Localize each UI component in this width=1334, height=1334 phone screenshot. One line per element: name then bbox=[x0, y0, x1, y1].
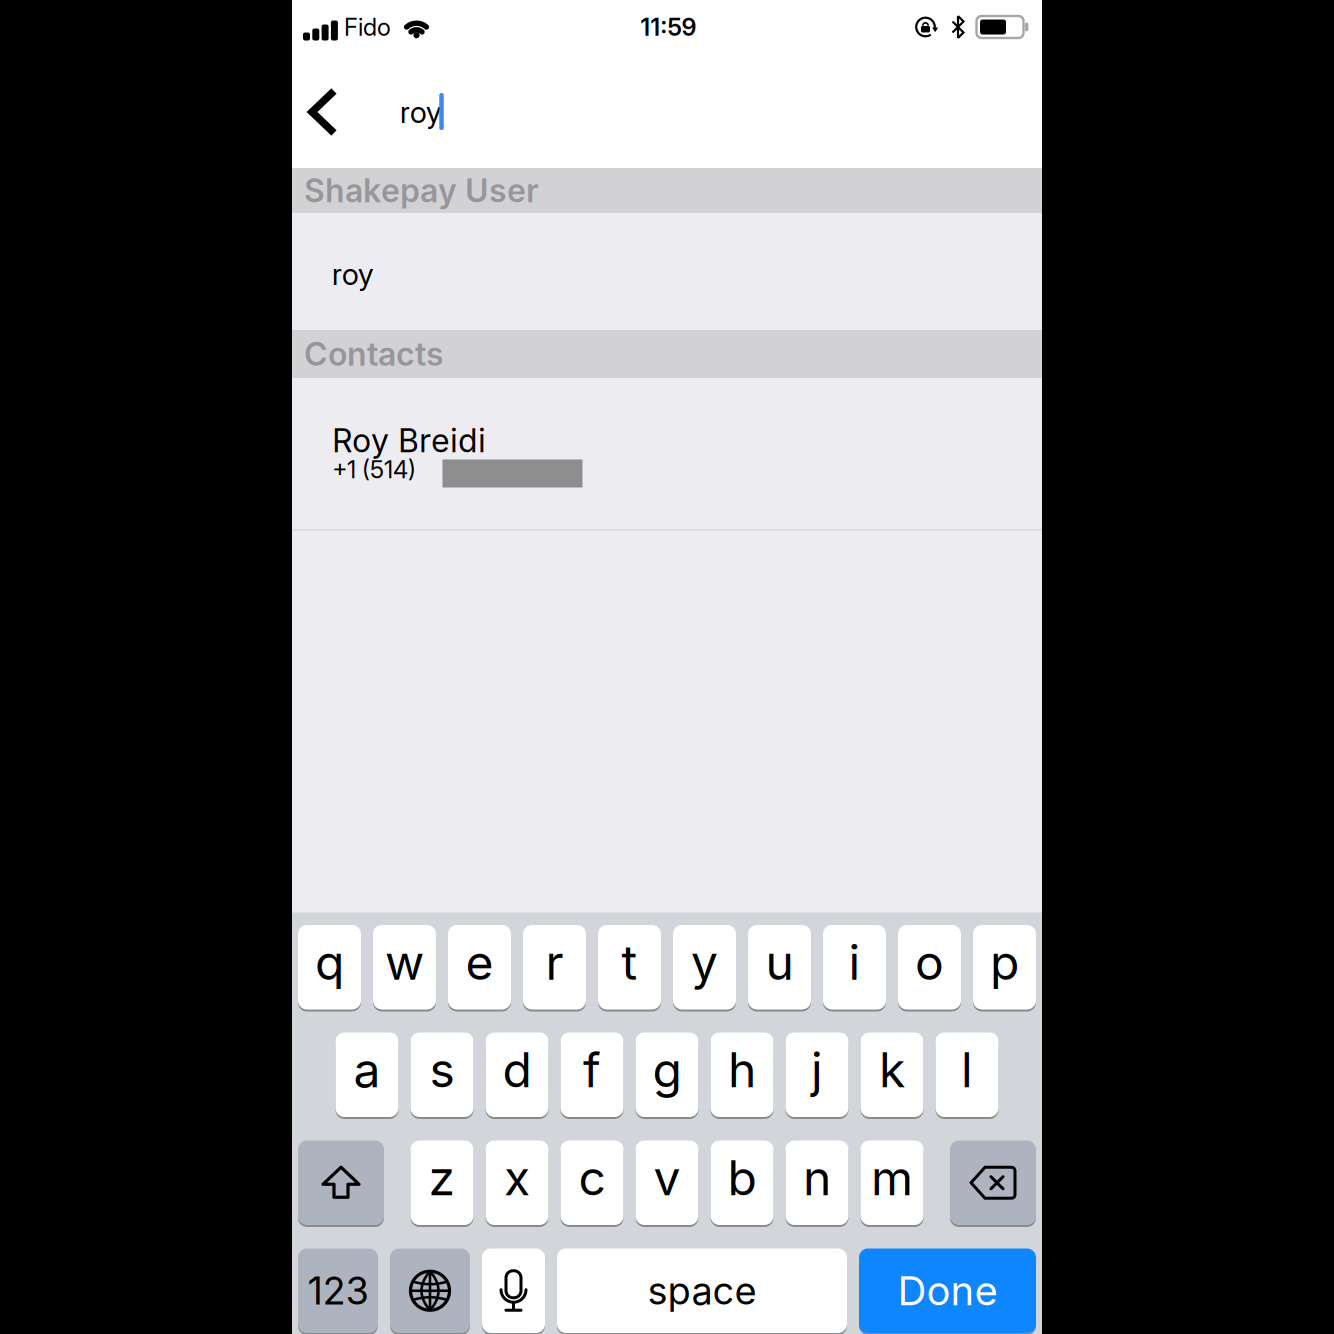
button[interactable]: t bbox=[598, 924, 661, 1010]
staticText: Shakepay User bbox=[304, 172, 539, 209]
button[interactable]: space bbox=[557, 1247, 847, 1334]
staticText: t bbox=[621, 934, 637, 990]
button[interactable]: v bbox=[635, 1139, 698, 1226]
staticText: roy bbox=[400, 94, 442, 130]
button[interactable]: i bbox=[823, 924, 886, 1010]
button[interactable]: z bbox=[410, 1139, 473, 1226]
button[interactable]: Shift bbox=[298, 1139, 384, 1226]
staticText: b bbox=[727, 1149, 756, 1206]
staticText: m bbox=[871, 1149, 913, 1206]
button[interactable]: e bbox=[448, 924, 511, 1010]
button[interactable]: p bbox=[973, 924, 1036, 1010]
staticText: o bbox=[915, 934, 944, 990]
staticText: Fido bbox=[344, 13, 391, 41]
button[interactable]: Roy Breidi bbox=[292, 378, 1042, 529]
button[interactable]: y bbox=[673, 924, 736, 1010]
staticText: s bbox=[429, 1041, 454, 1098]
button[interactable]: w bbox=[373, 924, 436, 1010]
button[interactable]: x bbox=[485, 1139, 548, 1226]
staticText: w bbox=[385, 934, 424, 990]
button[interactable]: l bbox=[935, 1031, 998, 1118]
staticText: u bbox=[765, 934, 793, 990]
staticText: Contacts bbox=[304, 335, 444, 373]
staticText: e bbox=[465, 934, 493, 990]
staticText: d bbox=[502, 1041, 531, 1098]
staticText: a bbox=[353, 1041, 380, 1098]
button[interactable]: 123 bbox=[298, 1247, 378, 1334]
button[interactable]: j bbox=[785, 1031, 848, 1118]
staticText: 123 bbox=[307, 1268, 368, 1313]
staticText: roy bbox=[332, 256, 374, 292]
staticText: c bbox=[578, 1149, 605, 1206]
staticText: h bbox=[728, 1041, 756, 1098]
staticText: j bbox=[811, 1041, 823, 1098]
staticText: r bbox=[545, 934, 563, 990]
button[interactable]: f bbox=[560, 1031, 623, 1118]
button[interactable]: Next keyboard bbox=[390, 1247, 470, 1334]
staticText: n bbox=[803, 1149, 831, 1206]
staticText: y bbox=[691, 934, 718, 990]
staticText: z bbox=[428, 1149, 455, 1206]
button[interactable]: s bbox=[410, 1031, 473, 1118]
button[interactable]: Dictate bbox=[482, 1247, 545, 1334]
button[interactable]: b bbox=[710, 1139, 773, 1226]
button[interactable]: Back bbox=[301, 86, 345, 138]
button[interactable]: c bbox=[560, 1139, 623, 1226]
staticText: Roy Breidi bbox=[332, 422, 486, 459]
staticText: v bbox=[653, 1149, 680, 1206]
button[interactable]: Delete bbox=[950, 1139, 1036, 1226]
button[interactable]: u bbox=[748, 924, 811, 1010]
button[interactable]: n bbox=[785, 1139, 848, 1226]
staticText: k bbox=[879, 1041, 905, 1098]
staticText: q bbox=[315, 934, 344, 990]
staticText: x bbox=[504, 1149, 530, 1206]
staticText: i bbox=[848, 934, 860, 990]
staticText: g bbox=[652, 1041, 681, 1098]
staticText: +1 (514) bbox=[332, 455, 416, 484]
button[interactable]: roy bbox=[332, 216, 1042, 332]
button[interactable]: k bbox=[860, 1031, 923, 1118]
button[interactable]: m bbox=[860, 1139, 923, 1226]
button[interactable]: h bbox=[710, 1031, 773, 1118]
button[interactable]: a bbox=[335, 1031, 398, 1118]
staticText: l bbox=[961, 1041, 973, 1098]
button[interactable]: r bbox=[523, 924, 586, 1010]
staticText: space bbox=[647, 1268, 756, 1313]
staticText: f bbox=[583, 1041, 601, 1098]
button[interactable]: o bbox=[898, 924, 961, 1010]
staticText: p bbox=[990, 934, 1019, 990]
button[interactable]: q bbox=[298, 924, 361, 1010]
staticText: Done bbox=[897, 1267, 997, 1314]
button[interactable]: g bbox=[635, 1031, 698, 1118]
button[interactable]: d bbox=[485, 1031, 548, 1118]
staticText: 11:59 bbox=[640, 13, 696, 41]
button[interactable]: Done bbox=[859, 1247, 1036, 1334]
